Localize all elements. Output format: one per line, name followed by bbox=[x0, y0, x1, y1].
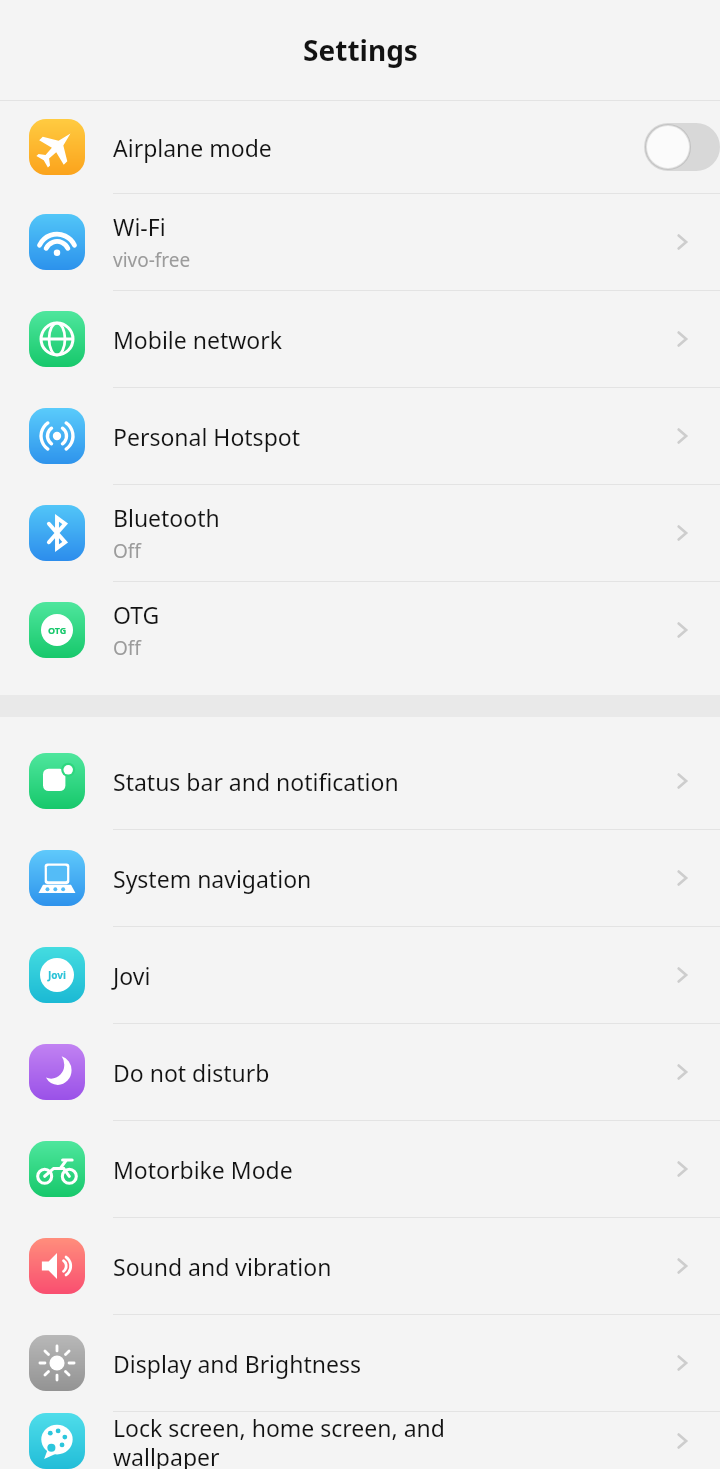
button[interactable]: OTG bbox=[0, 582, 720, 678]
button[interactable]: Status bar and notification bbox=[0, 733, 720, 829]
staticText: Do not disturb bbox=[113, 1057, 270, 1088]
other: Open bbox=[669, 1253, 695, 1279]
staticText: Settings bbox=[303, 31, 418, 69]
button[interactable]: Jovi bbox=[0, 927, 720, 1023]
other: Open bbox=[669, 1428, 695, 1454]
other: Open bbox=[669, 617, 695, 643]
button[interactable]: Bluetooth bbox=[0, 485, 720, 581]
button[interactable]: Sound and vibration bbox=[0, 1218, 720, 1314]
other: Open bbox=[669, 520, 695, 546]
staticText: Off bbox=[113, 635, 141, 661]
other: Open bbox=[669, 423, 695, 449]
staticText: OTG bbox=[113, 599, 160, 630]
staticText: Status bar and notification bbox=[113, 766, 399, 797]
button[interactable]: Airplane mode, off bbox=[644, 123, 720, 171]
staticText: Motorbike Mode bbox=[113, 1154, 293, 1185]
button[interactable]: Airplane mode bbox=[0, 101, 720, 193]
other: Open bbox=[669, 962, 695, 988]
button[interactable]: Wi-Fi bbox=[0, 194, 720, 290]
button[interactable]: Mobile network bbox=[0, 291, 720, 387]
button[interactable]: System navigation bbox=[0, 830, 720, 926]
other: Open bbox=[669, 768, 695, 794]
other: Open bbox=[669, 865, 695, 891]
staticText: OTG bbox=[48, 624, 67, 636]
staticText: Airplane mode bbox=[113, 132, 272, 163]
staticText: Off bbox=[113, 538, 141, 564]
button[interactable]: Personal Hotspot bbox=[0, 388, 720, 484]
staticText: Wi-Fi bbox=[113, 211, 166, 242]
staticText: Display and Brightness bbox=[113, 1348, 361, 1379]
staticText: Jovi bbox=[48, 968, 67, 982]
staticText: vivo-free bbox=[113, 247, 191, 273]
other: Open bbox=[669, 229, 695, 255]
staticText: Sound and vibration bbox=[113, 1251, 332, 1282]
staticText: Lock screen, home screen, and wallpaper bbox=[113, 1412, 445, 1469]
other: Open bbox=[669, 1059, 695, 1085]
staticText: Personal Hotspot bbox=[113, 421, 300, 452]
other: Open bbox=[669, 1350, 695, 1376]
staticText: Jovi bbox=[113, 960, 151, 991]
button[interactable]: Motorbike Mode bbox=[0, 1121, 720, 1217]
button[interactable]: Display and Brightness bbox=[0, 1315, 720, 1411]
other: Open bbox=[669, 1156, 695, 1182]
button[interactable]: Do not disturb bbox=[0, 1024, 720, 1120]
staticText: Mobile network bbox=[113, 324, 283, 355]
button[interactable]: Lock screen, home screen, and wallpaper bbox=[0, 1412, 720, 1469]
staticText: System navigation bbox=[113, 863, 312, 894]
staticText: Bluetooth bbox=[113, 502, 220, 533]
other: Open bbox=[669, 326, 695, 352]
